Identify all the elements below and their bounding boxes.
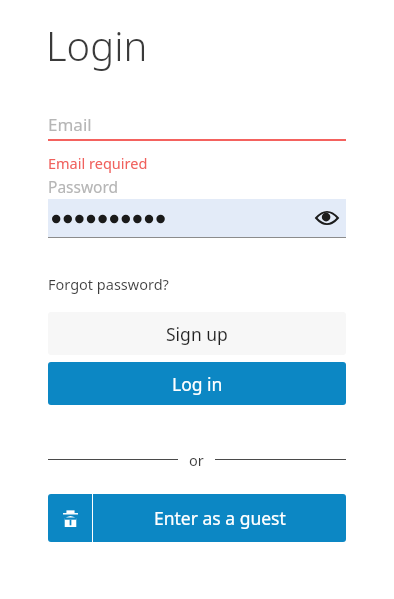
staticText: Password (48, 176, 119, 197)
button[interactable]: Show password (310, 201, 344, 235)
button[interactable]: Log in (48, 362, 346, 405)
button[interactable]: Forgot password? (48, 274, 169, 294)
button[interactable]: Sign up (48, 312, 346, 355)
staticText: Sign up (166, 322, 228, 346)
staticText: Log in (172, 372, 223, 396)
staticText: Email (48, 113, 92, 136)
staticText: or (189, 450, 204, 468)
staticText: Forgot password? (48, 274, 169, 294)
button[interactable]: Show password (48, 199, 346, 237)
button[interactable]: Enter as a guest (48, 494, 346, 542)
staticText: Email required (48, 153, 148, 173)
staticText: Login (46, 18, 148, 72)
staticText: Enter as a guest (154, 506, 286, 530)
button[interactable]: Email (48, 109, 346, 139)
